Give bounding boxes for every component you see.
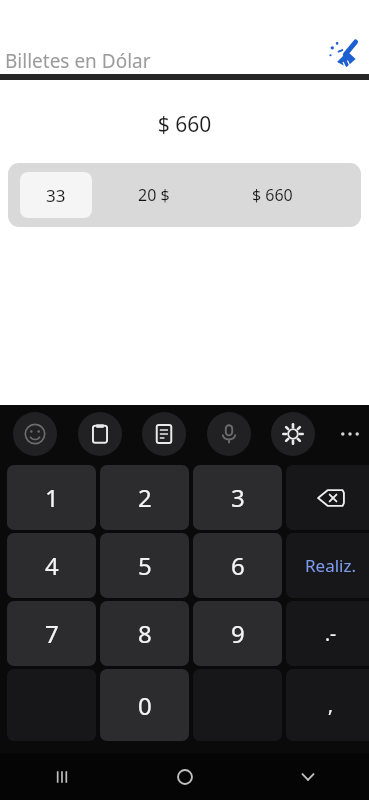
button[interactable]: 6	[193, 533, 282, 598]
staticText: 1	[45, 481, 59, 514]
button[interactable]: Ocultar teclado	[246, 753, 369, 800]
button[interactable]: 1	[7, 465, 96, 530]
staticText: ,	[328, 692, 334, 718]
button[interactable]: Realiz.	[286, 533, 369, 598]
staticText: 7	[45, 617, 59, 650]
staticText: 20 $	[138, 184, 170, 206]
button[interactable]: Ajustes	[271, 412, 315, 456]
button[interactable]: Limpiar	[326, 36, 363, 73]
staticText: 9	[231, 617, 245, 650]
staticText: 0	[138, 689, 152, 722]
button[interactable]: Recientes	[0, 753, 123, 800]
button[interactable]: Micrófono	[207, 412, 251, 456]
button[interactable]: 33	[8, 163, 361, 227]
button[interactable]: 0	[100, 669, 189, 741]
staticText: 6	[231, 549, 245, 582]
button[interactable]: Borrar	[286, 465, 369, 530]
staticText: $ 660	[0, 110, 369, 139]
button[interactable]: ,	[286, 669, 369, 741]
button[interactable]: 33	[20, 172, 92, 218]
button[interactable]: 3	[193, 465, 282, 530]
staticText: Billetes en Dólar	[5, 48, 151, 74]
staticText: 5	[138, 549, 152, 582]
button[interactable]: 7	[7, 601, 96, 666]
button[interactable]: 9	[193, 601, 282, 666]
staticText: .-	[325, 621, 337, 647]
button[interactable]: Más opciones	[330, 414, 369, 454]
button[interactable]: 2	[100, 465, 189, 530]
button[interactable]: 5	[100, 533, 189, 598]
staticText: 33	[46, 184, 66, 207]
staticText: 8	[138, 617, 152, 650]
button[interactable]: 8	[100, 601, 189, 666]
button[interactable]: 4	[7, 533, 96, 598]
staticText: 2	[138, 481, 152, 514]
button[interactable]: Portapapeles	[78, 412, 122, 456]
button[interactable]: Inicio	[123, 753, 246, 800]
button[interactable]: Texto	[142, 412, 186, 456]
button[interactable]: .-	[286, 601, 369, 666]
staticText: Realiz.	[305, 554, 357, 577]
button[interactable]: Emoji	[13, 412, 57, 456]
staticText: $ 660	[252, 184, 293, 206]
staticText: 4	[45, 549, 59, 582]
staticText: 3	[231, 481, 245, 514]
